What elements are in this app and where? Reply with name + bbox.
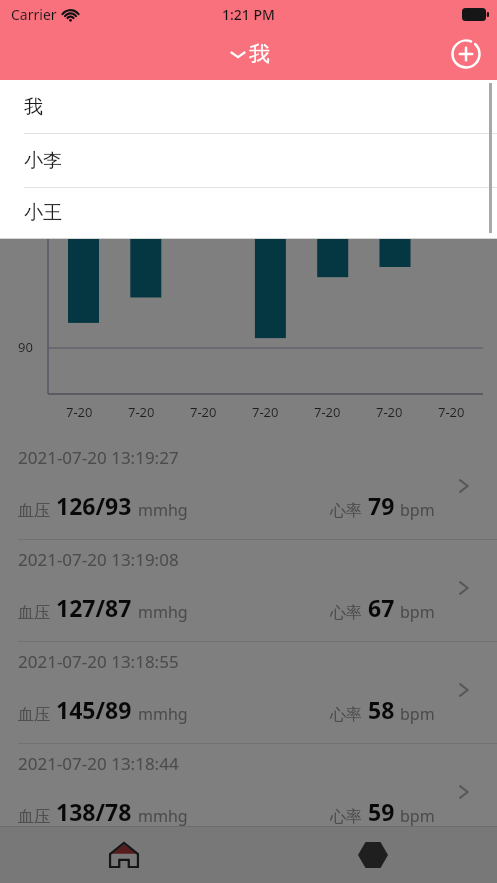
staticText: 血压 — [18, 603, 50, 623]
button[interactable]: 我 — [0, 80, 497, 133]
staticText: 145/89 — [56, 694, 132, 725]
button[interactable]: 2021-07-20 13:18:30 — [0, 846, 497, 883]
staticText: 2021-07-20 13:19:27 — [18, 446, 179, 469]
button[interactable]: 2021-07-20 13:18:55 — [0, 642, 497, 744]
staticText: mmhg — [138, 601, 188, 623]
staticText: 7-20 — [190, 403, 217, 421]
button[interactable]: 2021-07-20 13:18:44 — [0, 744, 497, 846]
staticText: 79 — [368, 490, 395, 521]
staticText: 2021-07-20 13:19:08 — [18, 548, 179, 571]
staticText: bpm — [400, 703, 435, 725]
staticText: 心率 — [330, 705, 362, 725]
staticText: 2021-07-20 13:18:30 — [18, 854, 179, 877]
staticText: 138/78 — [56, 796, 132, 827]
staticText: 7-20 — [252, 403, 279, 421]
button[interactable]: Devices — [248, 826, 497, 883]
staticText: mmhg — [138, 499, 188, 521]
staticText: bpm — [400, 601, 435, 623]
staticText: bpm — [400, 499, 435, 521]
staticText: 7-20 — [438, 403, 465, 421]
staticText: 小王 — [24, 201, 62, 225]
staticText: 心率 — [330, 807, 362, 827]
button[interactable]: 小王 — [0, 188, 497, 238]
staticText: 血压 — [18, 705, 50, 725]
button[interactable]: 小李 — [0, 134, 497, 187]
staticText: 7-20 — [66, 403, 93, 421]
staticText: 59 — [368, 796, 395, 827]
staticText: 126/93 — [56, 490, 132, 521]
staticText: bpm — [400, 805, 435, 827]
staticText: 1:21 PM — [222, 5, 275, 24]
staticText: 心率 — [330, 501, 362, 521]
button[interactable]: Add record — [448, 36, 484, 72]
staticText: 127/87 — [56, 592, 132, 623]
staticText: 小李 — [24, 149, 62, 173]
button[interactable]: Home — [0, 826, 248, 883]
staticText: 7-20 — [314, 403, 341, 421]
button[interactable]: 2021-07-20 13:19:08 — [0, 540, 497, 642]
staticText: 我 — [24, 95, 43, 119]
staticText: 58 — [368, 694, 395, 725]
staticText: mmhg — [138, 805, 188, 827]
staticText: 67 — [368, 592, 395, 623]
staticText: 90 — [18, 338, 33, 356]
staticText: 我 — [249, 41, 270, 67]
staticText: 7-20 — [128, 403, 155, 421]
button[interactable]: 我 — [221, 37, 276, 71]
staticText: 7-20 — [376, 403, 403, 421]
staticText: 2021-07-20 13:18:55 — [18, 650, 179, 673]
staticText: 血压 — [18, 501, 50, 521]
button[interactable]: 2021-07-20 13:19:27 — [0, 438, 497, 540]
staticText: mmhg — [138, 703, 188, 725]
staticText: Carrier — [11, 5, 57, 24]
staticText: 血压 — [18, 807, 50, 827]
staticText: 2021-07-20 13:18:44 — [18, 752, 179, 775]
staticText: 心率 — [330, 603, 362, 623]
